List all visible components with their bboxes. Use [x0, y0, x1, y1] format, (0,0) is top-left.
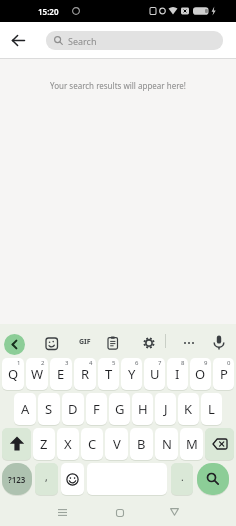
- button[interactable]: J: [155, 393, 176, 425]
- staticText: A: [21, 400, 30, 418]
- staticText: R: [81, 365, 90, 383]
- button[interactable]: [168, 505, 181, 518]
- staticText: X: [64, 435, 72, 453]
- button[interactable]: P: [213, 358, 234, 390]
- staticText: K: [184, 400, 193, 418]
- staticText: 5: [112, 359, 116, 367]
- button[interactable]: [4, 334, 25, 355]
- staticText: 6: [135, 359, 139, 367]
- staticText: 8: [181, 359, 185, 367]
- button[interactable]: .: [171, 463, 193, 495]
- button[interactable]: [180, 336, 198, 350]
- staticText: 4: [89, 359, 93, 367]
- button[interactable]: GIF: [74, 335, 96, 348]
- staticText: Search: [68, 35, 97, 47]
- button[interactable]: B: [130, 428, 153, 460]
- staticText: H: [138, 400, 148, 418]
- button[interactable]: L: [201, 393, 222, 425]
- staticText: I: [175, 365, 180, 383]
- button[interactable]: N: [155, 428, 178, 460]
- staticText: 0: [227, 359, 231, 367]
- staticText: V: [113, 435, 121, 453]
- staticText: .: [181, 470, 184, 484]
- staticText: M: [186, 435, 198, 453]
- button[interactable]: [45, 337, 59, 351]
- button[interactable]: [197, 463, 229, 495]
- staticText: B: [137, 435, 146, 453]
- staticText: 7: [158, 359, 162, 367]
- button[interactable]: [56, 506, 69, 519]
- button[interactable]: [61, 463, 84, 495]
- staticText: U: [150, 365, 160, 383]
- staticText: J: [164, 400, 168, 418]
- staticText: E: [57, 365, 65, 383]
- staticText: N: [162, 435, 172, 453]
- staticText: D: [68, 400, 78, 418]
- button[interactable]: X: [57, 428, 79, 460]
- button[interactable]: [6, 28, 30, 52]
- button[interactable]: S: [38, 393, 60, 425]
- button[interactable]: R: [74, 358, 96, 390]
- staticText: F: [93, 400, 100, 418]
- button[interactable]: [205, 428, 234, 460]
- button[interactable]: Q: [2, 358, 24, 390]
- button[interactable]: [2, 428, 31, 460]
- button[interactable]: W: [26, 358, 48, 390]
- button[interactable]: ?123: [2, 463, 32, 495]
- staticText: 1: [17, 359, 21, 367]
- staticText: W: [31, 365, 44, 383]
- button[interactable]: [212, 335, 226, 351]
- staticText: Y: [128, 365, 136, 383]
- staticText: ,: [45, 470, 48, 484]
- staticText: 3: [65, 359, 69, 367]
- button[interactable]: [106, 336, 120, 350]
- button[interactable]: D: [62, 393, 84, 425]
- button[interactable]: U: [144, 358, 165, 390]
- button[interactable]: A: [14, 393, 36, 425]
- button[interactable]: ,: [35, 463, 58, 495]
- button[interactable]: [113, 506, 126, 519]
- staticText: Z: [40, 435, 48, 453]
- button[interactable]: F: [86, 393, 107, 425]
- button[interactable]: K: [178, 393, 199, 425]
- staticText: G: [115, 400, 125, 418]
- button[interactable]: G: [109, 393, 130, 425]
- button[interactable]: H: [132, 393, 153, 425]
- button[interactable]: Z: [33, 428, 55, 460]
- staticText: 9: [204, 359, 208, 367]
- button[interactable]: M: [180, 428, 203, 460]
- button[interactable]: C: [81, 428, 103, 460]
- button[interactable]: V: [105, 428, 128, 460]
- staticText: P: [220, 365, 228, 383]
- staticText: 2: [41, 359, 45, 367]
- button[interactable]: O: [190, 358, 211, 390]
- staticText: O: [195, 365, 206, 383]
- button[interactable]: E: [50, 358, 72, 390]
- button[interactable]: Y: [121, 358, 142, 390]
- staticText: Q: [8, 365, 19, 383]
- button[interactable]: T: [98, 358, 119, 390]
- button[interactable]: Search: [46, 31, 223, 50]
- staticText: Your search results will appear here!: [50, 80, 186, 91]
- staticText: ?123: [8, 474, 26, 485]
- staticText: T: [105, 365, 113, 383]
- staticText: S: [45, 400, 53, 418]
- button[interactable]: I: [167, 358, 188, 390]
- staticText: L: [208, 400, 215, 418]
- staticText: 15:20: [38, 6, 59, 17]
- button[interactable]: [142, 336, 156, 350]
- staticText: C: [88, 435, 97, 453]
- staticText: GIF: [79, 337, 91, 347]
